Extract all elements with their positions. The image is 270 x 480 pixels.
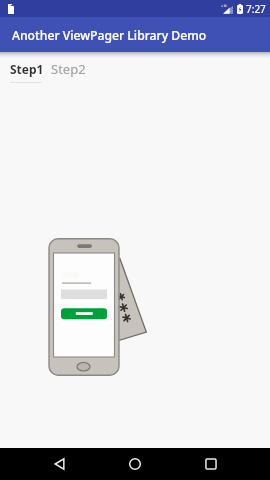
staticText: Another ViewPager Library Demo [12,27,207,44]
button[interactable]: Home [113,448,157,480]
staticText: Step2 [51,60,86,78]
staticText: 7:27 [246,2,266,16]
button[interactable]: Step1 [0,61,49,77]
button[interactable]: Back [38,448,82,480]
staticText: Step1 [10,61,44,77]
button[interactable]: Step2 [49,60,94,78]
button[interactable]: Recent apps [189,448,233,480]
